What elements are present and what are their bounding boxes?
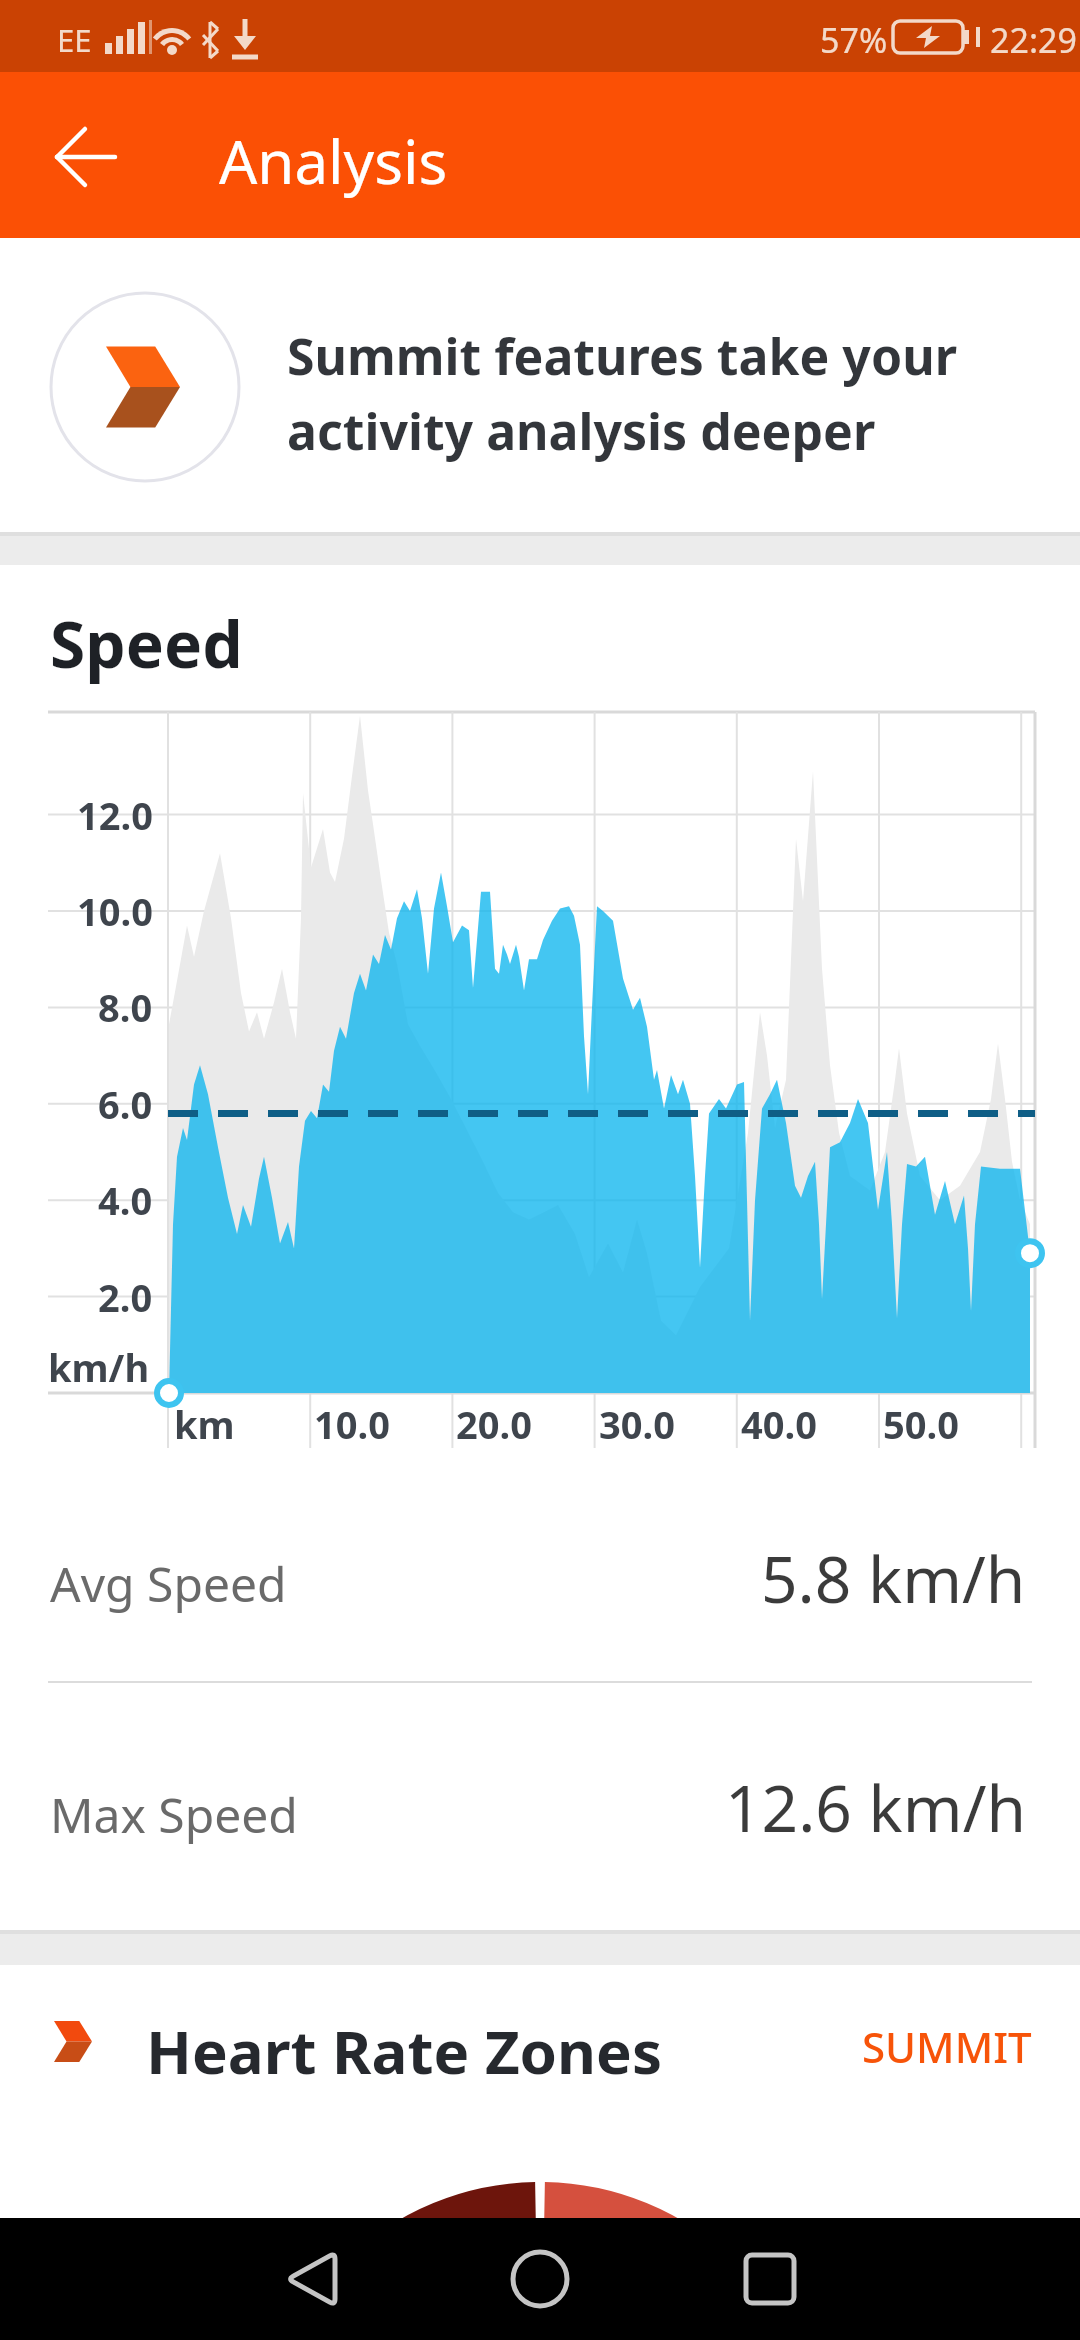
staticText: SUMMIT <box>862 2018 1032 2075</box>
staticText: 5.8 km/h <box>761 1535 1026 1622</box>
button[interactable]: Max Speed <box>0 1682 1080 1912</box>
button[interactable] <box>480 2218 600 2340</box>
staticText: km/h <box>48 1341 150 1393</box>
button[interactable]: SUMMIT <box>820 2010 1032 2082</box>
button[interactable] <box>30 102 140 212</box>
button[interactable] <box>250 2218 370 2340</box>
staticText: Analysis <box>219 120 448 202</box>
staticText: 40.0 <box>741 1398 817 1450</box>
staticText: 57% <box>820 17 888 63</box>
staticText: 10.0 <box>77 885 153 937</box>
staticText: 12.6 km/h <box>725 1764 1026 1851</box>
staticText: 10.0 <box>314 1398 390 1450</box>
staticText: Heart Rate Zones <box>146 2010 663 2092</box>
staticText: 20.0 <box>456 1398 532 1450</box>
button[interactable]: Summit features take your <box>0 238 1080 532</box>
staticText: 6.0 <box>98 1078 153 1130</box>
staticText: 50.0 <box>883 1398 959 1450</box>
button[interactable] <box>710 2218 830 2340</box>
staticText: 2.0 <box>98 1271 153 1323</box>
staticText: Max Speed <box>50 1782 298 1847</box>
staticText: EE <box>57 19 92 61</box>
staticText: Summit features take your <box>287 322 957 390</box>
staticText: Avg Speed <box>50 1551 287 1616</box>
staticText: 4.0 <box>98 1174 153 1226</box>
staticText: 30.0 <box>599 1398 675 1450</box>
staticText: 12.0 <box>77 789 153 841</box>
staticText: 8.0 <box>98 981 153 1033</box>
button[interactable]: Avg Speed <box>0 1490 1080 1682</box>
staticText: activity analysis deeper <box>287 397 876 465</box>
staticText: 22:29 <box>990 17 1077 63</box>
staticText: Speed <box>50 600 243 687</box>
staticText: km <box>174 1398 235 1450</box>
